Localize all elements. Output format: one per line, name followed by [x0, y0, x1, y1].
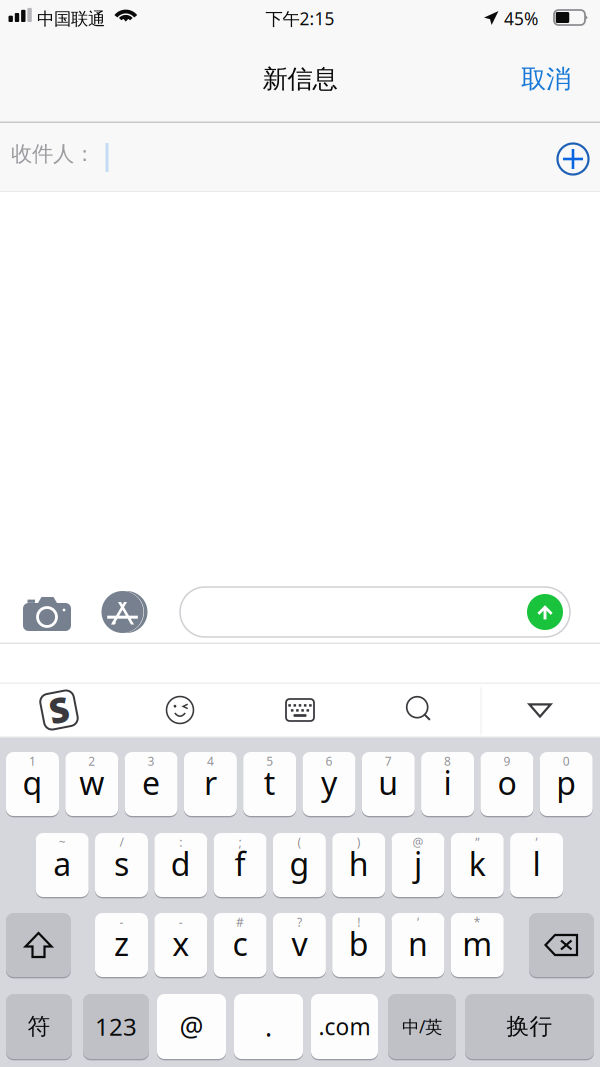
button[interactable]: 3 — [125, 752, 178, 816]
button[interactable]: Camera — [0, 0, 600, 1067]
button[interactable]: 2 — [65, 752, 118, 816]
button[interactable]: Send — [523, 590, 567, 634]
staticText: h — [349, 842, 369, 885]
staticText: a — [53, 842, 71, 885]
staticText: .com — [318, 1011, 370, 1041]
staticText: - — [179, 914, 183, 930]
staticText: 下午2:15 — [265, 7, 334, 30]
button[interactable]: 6 — [302, 752, 355, 816]
staticText: - — [119, 914, 123, 930]
staticText: 中/英 — [402, 1015, 442, 1038]
staticText: 符 — [27, 1013, 50, 1040]
button[interactable]: Delete — [529, 913, 594, 977]
staticText: w — [79, 761, 104, 804]
button[interactable]: @ — [157, 994, 226, 1059]
button[interactable]: ! — [332, 913, 385, 977]
button[interactable]: @ — [391, 833, 444, 897]
button[interactable]: 7 — [362, 752, 415, 816]
staticText: y — [321, 761, 337, 804]
staticText: p — [556, 761, 576, 804]
staticText: 5 — [266, 753, 273, 769]
staticText: 7 — [385, 753, 392, 769]
staticText: d — [171, 842, 191, 885]
button[interactable]: ~ — [36, 833, 89, 897]
staticText: u — [378, 761, 398, 804]
button[interactable]: ? — [273, 913, 326, 977]
staticText: 1 — [29, 753, 36, 769]
button[interactable]: ’ — [510, 833, 563, 897]
staticText: s — [114, 842, 129, 885]
staticText: ( — [297, 834, 301, 850]
button[interactable]: .com — [311, 994, 378, 1059]
button[interactable]: ( — [273, 833, 326, 897]
staticText: ” — [475, 834, 479, 850]
button[interactable]: : — [154, 833, 207, 897]
button[interactable]: / — [95, 833, 148, 897]
staticText: 换行 — [506, 1013, 552, 1040]
button[interactable]: 5 — [243, 752, 296, 816]
staticText: 0 — [563, 753, 570, 769]
button[interactable]: Sogou input — [0, 0, 600, 1067]
button[interactable]: 9 — [480, 752, 533, 816]
staticText: ’ — [417, 914, 419, 930]
staticText: b — [349, 922, 369, 965]
button[interactable]: 换行 — [465, 994, 594, 1059]
button[interactable]: Emoji — [0, 0, 600, 1067]
button[interactable]: Hide keyboard — [0, 0, 600, 1067]
staticText: 收件人： — [11, 141, 95, 167]
button[interactable]: - — [95, 913, 148, 977]
staticText: ’ — [536, 834, 538, 850]
staticText: j — [414, 842, 422, 885]
button[interactable]: Keyboard layout — [0, 0, 600, 1067]
button[interactable]: # — [214, 913, 267, 977]
staticText: g — [289, 842, 309, 885]
staticText: 9 — [503, 753, 510, 769]
staticText: o — [497, 761, 516, 804]
staticText: v — [291, 922, 307, 965]
staticText: : — [179, 834, 182, 850]
button[interactable]: * — [451, 913, 504, 977]
staticText: @ — [412, 834, 423, 850]
staticText: t — [264, 761, 276, 804]
button[interactable]: ) — [332, 833, 385, 897]
button[interactable]: 中/英 — [388, 994, 456, 1059]
staticText: * — [474, 914, 481, 930]
staticText: r — [204, 761, 217, 804]
button[interactable]: Search — [0, 0, 600, 1067]
button[interactable]: 8 — [421, 752, 474, 816]
button[interactable]: 123 — [83, 994, 149, 1059]
button[interactable]: ; — [214, 833, 267, 897]
button[interactable]: App Store — [0, 0, 600, 1067]
staticText: 2 — [88, 753, 95, 769]
staticText: k — [469, 842, 486, 885]
staticText: 新信息 — [262, 63, 337, 94]
staticText: n — [408, 922, 428, 965]
staticText: ! — [357, 914, 360, 930]
button[interactable]: ’ — [391, 913, 444, 977]
button[interactable]: - — [154, 913, 207, 977]
staticText: 4 — [207, 753, 214, 769]
button[interactable]: 1 — [6, 752, 59, 816]
button[interactable]: ” — [451, 833, 504, 897]
button[interactable]: Shift — [6, 913, 71, 977]
staticText: x — [172, 922, 189, 965]
staticText: ? — [297, 914, 302, 930]
staticText: 中国联通 — [37, 8, 105, 30]
staticText: . — [265, 1009, 272, 1044]
staticText: ; — [239, 834, 242, 850]
button[interactable]: Add recipient — [550, 136, 596, 182]
button[interactable]: 符 — [6, 994, 72, 1059]
staticText: z — [114, 922, 129, 965]
staticText: ) — [357, 834, 361, 850]
staticText: 取消 — [521, 63, 571, 94]
staticText: f — [235, 842, 246, 885]
button[interactable]: . — [234, 994, 303, 1059]
staticText: S — [49, 686, 69, 732]
staticText: # — [236, 914, 244, 930]
button[interactable]: 取消 — [503, 51, 589, 107]
staticText: ~ — [59, 834, 66, 850]
button[interactable]: 4 — [184, 752, 237, 816]
staticText: l — [533, 842, 541, 885]
button[interactable]: 0 — [540, 752, 593, 816]
staticText: / — [119, 834, 123, 850]
